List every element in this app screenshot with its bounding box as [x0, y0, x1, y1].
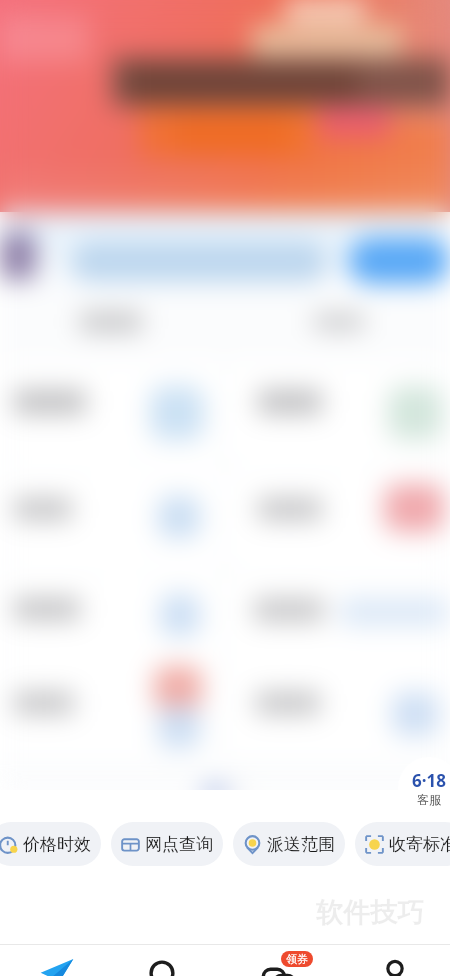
button[interactable]: 派送范围 — [233, 822, 345, 866]
button[interactable]: 网点查询 — [111, 822, 223, 866]
button[interactable]: 查件 — [146, 957, 180, 976]
staticText: 领券 — [286, 952, 308, 966]
staticText: 收寄标准 — [389, 834, 450, 855]
button[interactable]: 客服 — [398, 757, 450, 819]
staticText: 客服 — [417, 792, 441, 807]
staticText: 网点查询 — [145, 834, 213, 855]
button[interactable]: 领券 — [262, 957, 296, 976]
staticText: 6·18 — [412, 769, 446, 792]
button[interactable]: 价格时效 — [0, 822, 101, 866]
button[interactable]: 收寄标准 — [355, 822, 450, 866]
staticText: 价格时效 — [23, 834, 91, 855]
staticText: 软件技巧 — [316, 896, 424, 930]
button[interactable]: 我的 — [378, 957, 412, 976]
staticText: 派送范围 — [267, 834, 335, 855]
button[interactable]: 首页 — [40, 957, 74, 976]
